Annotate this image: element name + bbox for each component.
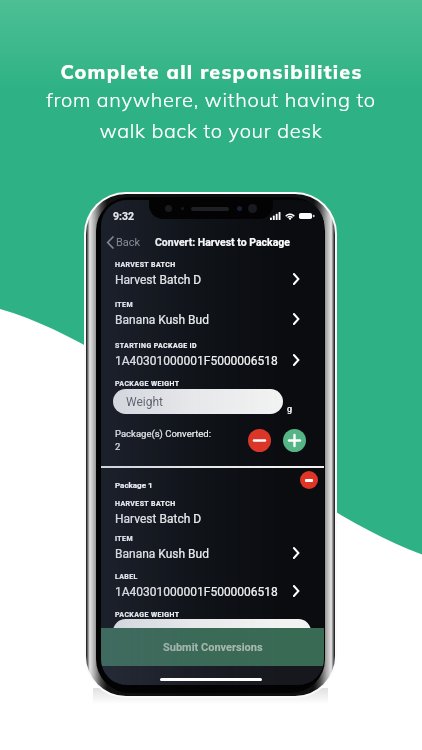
staticText: Submit Conversions [163, 641, 263, 654]
staticText: Harvest Batch D [115, 273, 202, 287]
button[interactable]: Submit Conversions [101, 628, 324, 666]
staticText: Banana Kush Bud [115, 547, 209, 561]
staticText: Package 1 [115, 481, 153, 490]
button[interactable]: Weight [113, 389, 283, 414]
staticText: 1A40301000001F5000006518 [115, 585, 278, 599]
staticText: PACKAGE WEIGHT [115, 611, 180, 619]
staticText: Package(s) Converted: 2 [115, 428, 211, 453]
button[interactable]: Back [101, 232, 324, 252]
staticText: STARTING PACKAGE ID [115, 342, 198, 350]
staticText: g [287, 404, 293, 415]
staticText: Convert: Harvest to Package [155, 236, 290, 248]
staticText: HARVEST BATCH [115, 261, 176, 269]
button[interactable]: Add package [283, 429, 306, 452]
staticText: Harvest Batch D [115, 512, 202, 526]
staticText: LABEL [115, 573, 138, 581]
button[interactable]: Open 1A40301000001F5000006518 [285, 349, 307, 371]
staticText: HARVEST BATCH [115, 500, 176, 508]
button[interactable]: Remove package [300, 471, 318, 489]
staticText: Complete all responsibilities [60, 59, 363, 84]
staticText: Banana Kush Bud [115, 313, 209, 327]
staticText: Back [116, 236, 141, 249]
staticText: 9:32 [113, 210, 135, 222]
staticText: Weight [126, 395, 164, 409]
staticText: 1A40301000001F5000006518 [115, 354, 278, 368]
button[interactable]: Open 1A40301000001F5000006518 [285, 580, 307, 602]
button[interactable]: Remove package [248, 429, 271, 452]
staticText: ITEM [115, 535, 133, 543]
button[interactable]: Open Banana Kush Bud [285, 542, 307, 564]
staticText: ITEM [115, 301, 133, 309]
staticText: PACKAGE WEIGHT [115, 380, 180, 388]
staticText: from anywhere, without having to walk ba… [46, 87, 376, 143]
button[interactable]: Open Banana Kush Bud [285, 308, 307, 330]
button[interactable]: Open Harvest Batch D [285, 268, 307, 290]
